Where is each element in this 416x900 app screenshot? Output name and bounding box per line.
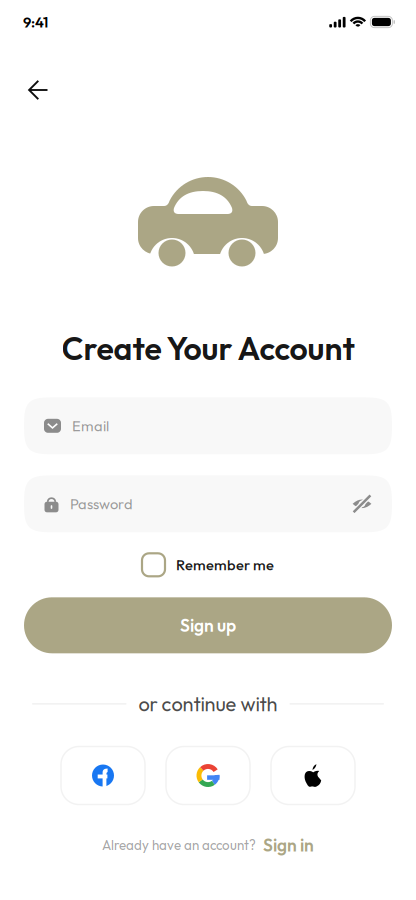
button[interactable]: Sign in — [263, 834, 314, 856]
staticText: or continue with — [138, 691, 277, 716]
staticText: Remember me — [176, 556, 274, 574]
button[interactable]: Back — [15, 45, 61, 113]
button[interactable]: Sign up with Google — [166, 746, 250, 804]
staticText: Sign in — [263, 834, 314, 856]
button[interactable]: Remember me — [142, 553, 274, 576]
button[interactable]: Sign up with Facebook — [61, 746, 145, 804]
button[interactable]: Sign up — [24, 597, 392, 653]
staticText: Already have an account? — [102, 837, 256, 853]
staticText: Create Your Account — [61, 328, 354, 368]
staticText: Password — [70, 495, 133, 513]
staticText: Email — [72, 417, 109, 435]
staticText: 9:41 — [23, 13, 48, 31]
button[interactable]: Sign up with Apple — [271, 746, 355, 804]
staticText: Sign up — [180, 614, 236, 636]
